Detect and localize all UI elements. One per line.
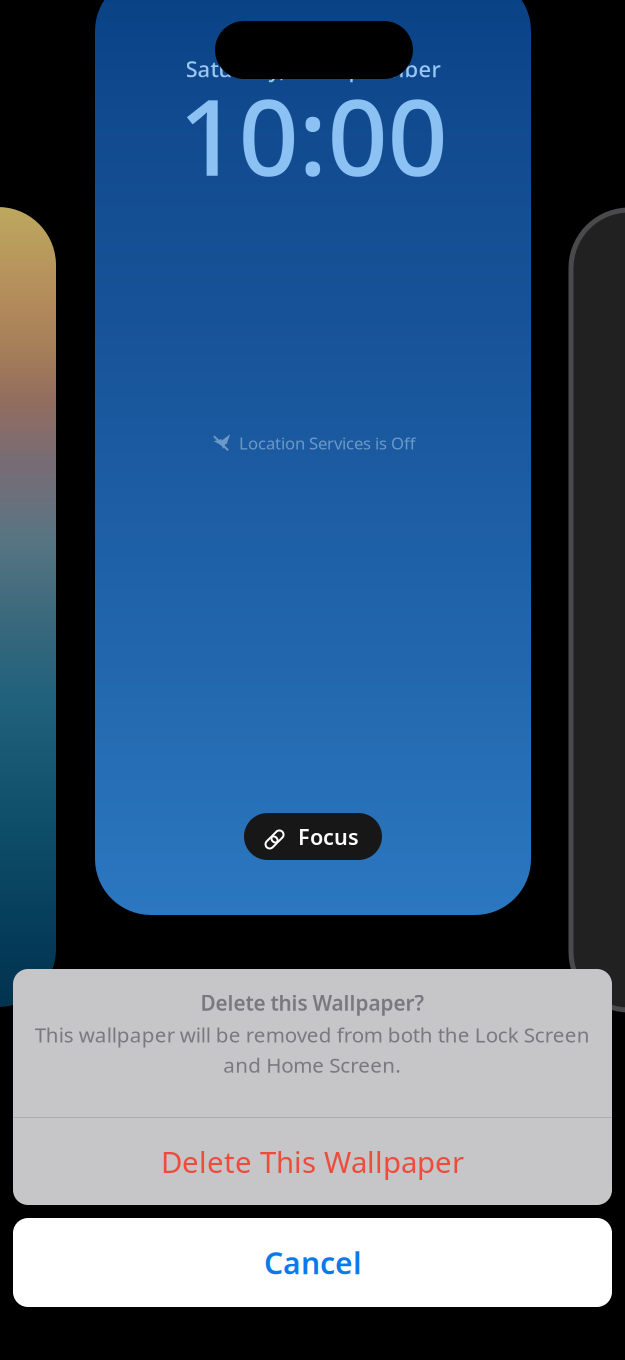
staticText: Location Services is Off — [239, 432, 415, 454]
button[interactable]: Delete This Wallpaper — [13, 1118, 612, 1205]
staticText: Saturday, 21 September — [185, 54, 440, 83]
staticText: Cancel — [264, 1243, 361, 1282]
button[interactable]: Focus — [244, 813, 382, 860]
button[interactable]: Cancel — [13, 1218, 612, 1307]
staticText: This wallpaper will be removed from both… — [34, 1021, 589, 1078]
staticText: Delete this Wallpaper? — [200, 989, 424, 1016]
staticText: Delete This Wallpaper — [161, 1142, 464, 1181]
staticText: 10:00 — [178, 65, 447, 205]
staticText: Focus — [298, 822, 359, 851]
